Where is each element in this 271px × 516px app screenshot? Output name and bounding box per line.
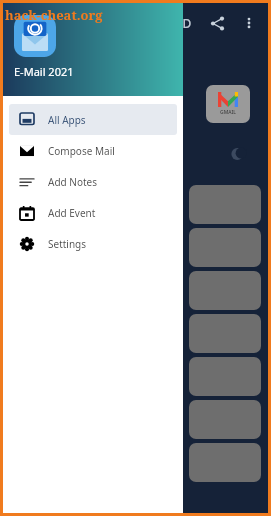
button[interactable]: All Apps — [9, 104, 177, 135]
button[interactable] — [189, 443, 261, 482]
button[interactable] — [189, 314, 261, 353]
button[interactable]: Compose Mail — [9, 135, 177, 166]
button[interactable] — [189, 271, 261, 310]
button[interactable] — [189, 228, 261, 267]
button[interactable]: GMAIL — [206, 85, 250, 123]
staticText: Compose Mail — [48, 144, 115, 158]
staticText: All Apps — [48, 113, 86, 127]
button[interactable]: Toggle theme — [228, 145, 246, 163]
button[interactable] — [189, 400, 261, 439]
staticText: Add Notes — [48, 175, 97, 189]
staticText: ARD — [167, 15, 192, 31]
button[interactable]: Share — [204, 10, 230, 36]
button[interactable]: Settings — [9, 228, 177, 259]
staticText: Add Event — [48, 206, 96, 220]
staticText: GMAIL — [220, 109, 236, 116]
button[interactable]: Add Notes — [9, 166, 177, 197]
staticText: hack-cheat.org — [5, 6, 103, 24]
button[interactable]: More options — [236, 10, 262, 36]
button[interactable] — [189, 185, 261, 224]
button[interactable]: Add Event — [9, 197, 177, 228]
staticText: Settings — [48, 237, 87, 251]
staticText: E-Mail 2021 — [14, 64, 74, 79]
button[interactable] — [189, 357, 261, 396]
